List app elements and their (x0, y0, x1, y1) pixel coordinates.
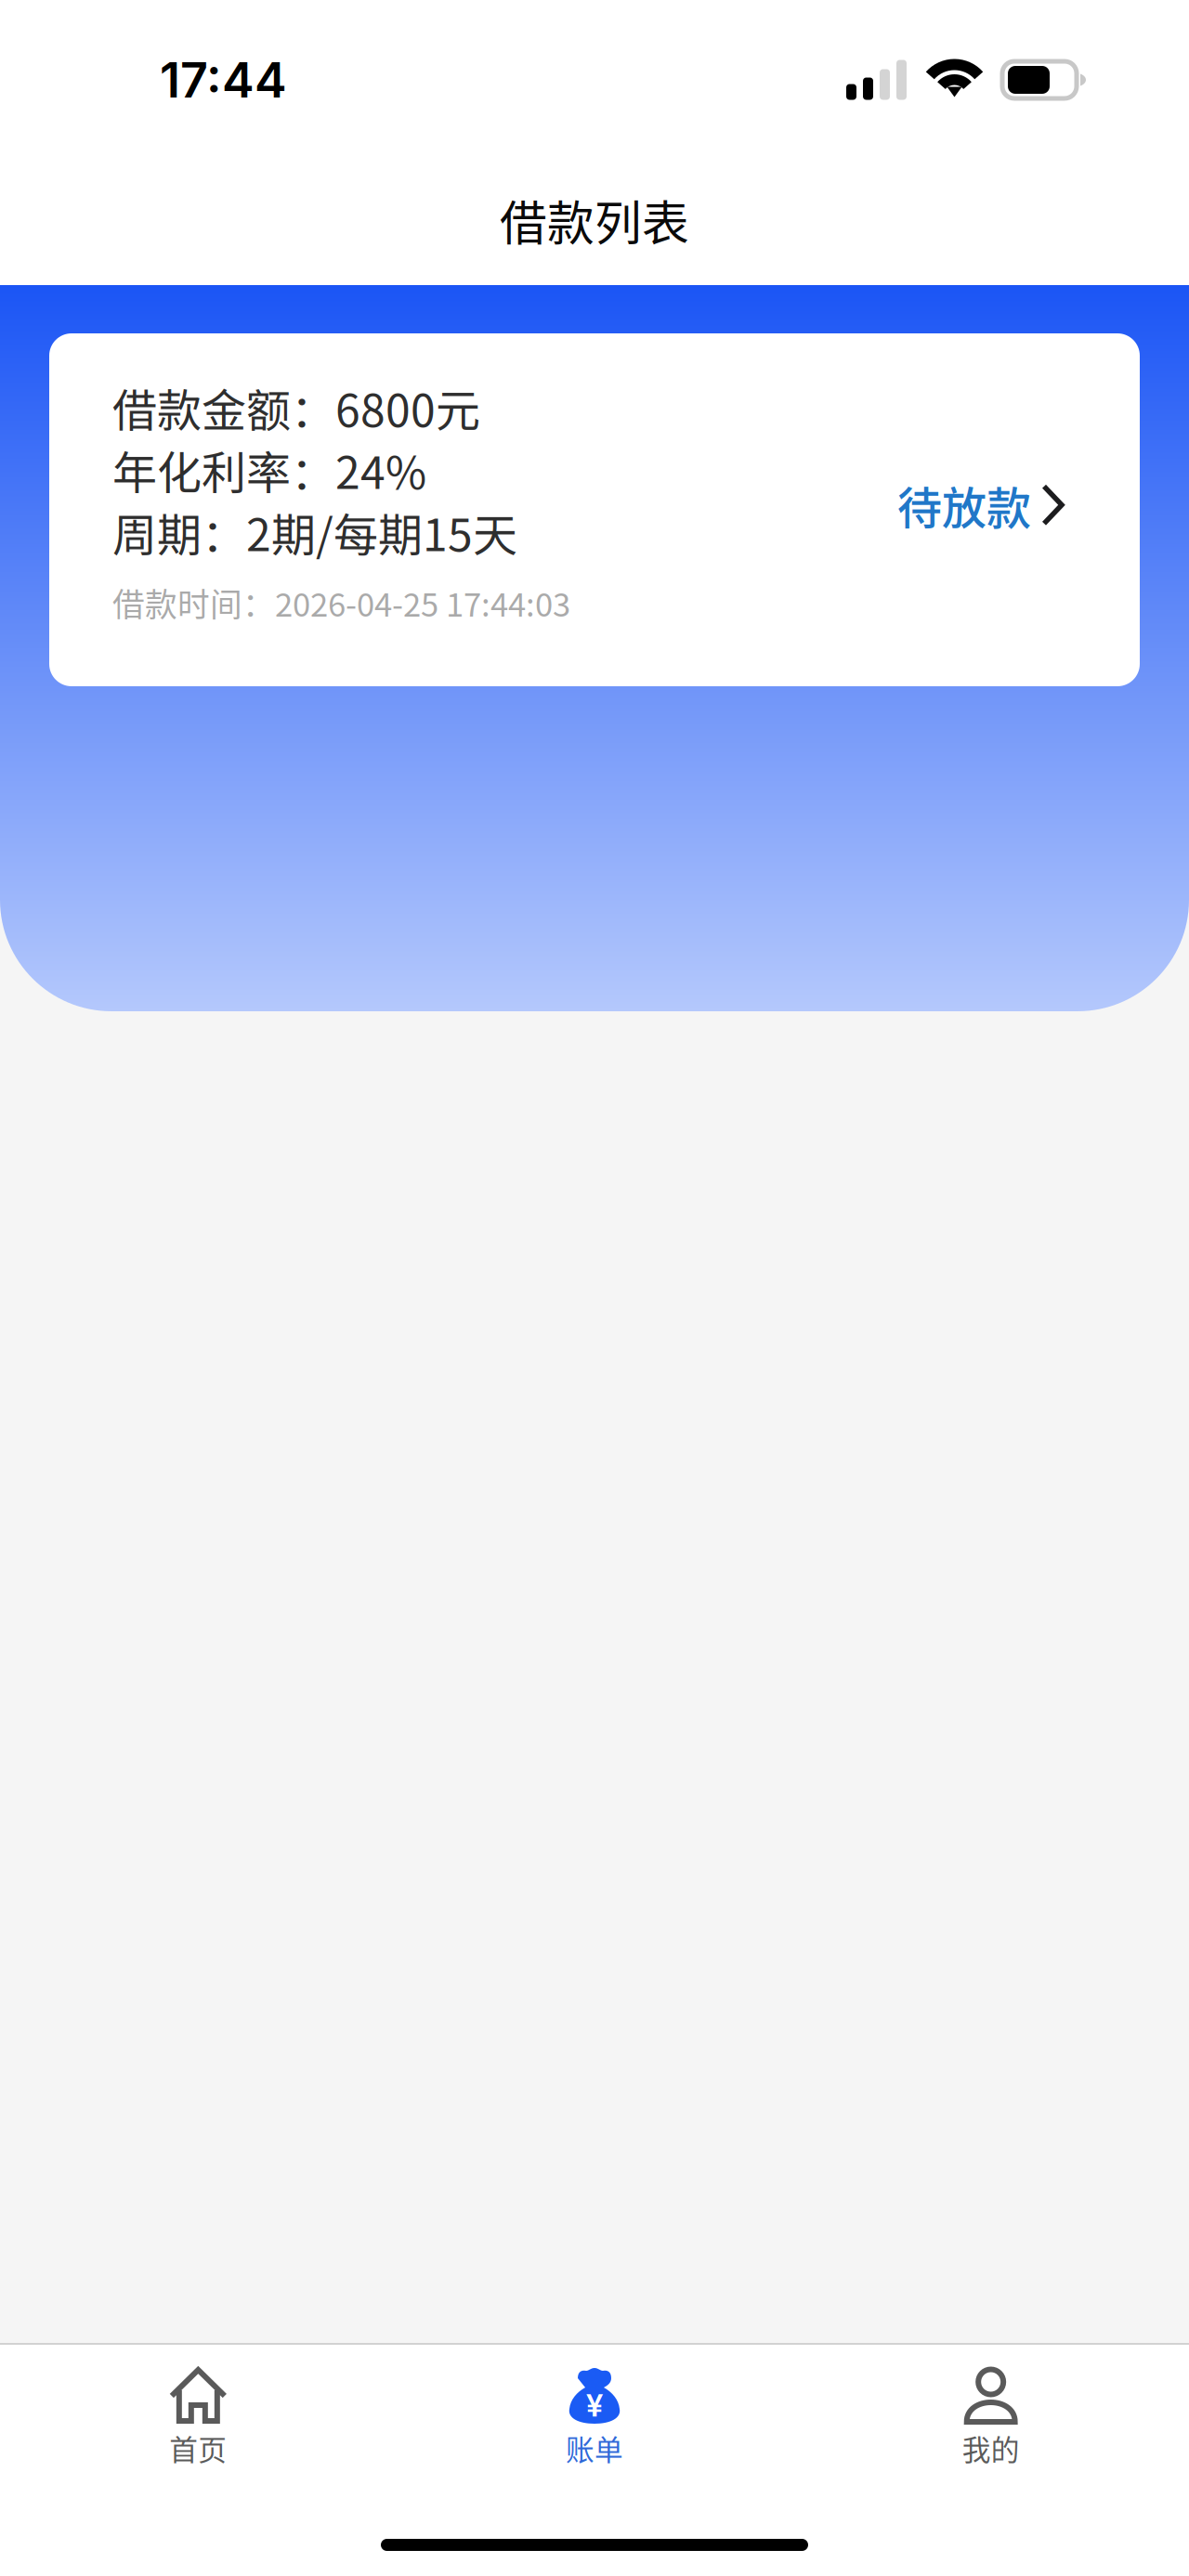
staticText: 借款时间：2026-04-25 17:44:03 (112, 579, 570, 626)
staticText: ¥ (586, 2386, 603, 2424)
button[interactable]: 首页 (0, 2358, 396, 2476)
staticText: 账单 (566, 2427, 623, 2469)
staticText: 17:44 (160, 51, 287, 109)
staticText: 待放款 (897, 473, 1031, 537)
button[interactable]: 借款金额：6800元 (49, 333, 1140, 686)
staticText: 我的 (962, 2427, 1020, 2469)
staticText: 借款金额：6800元 (112, 375, 480, 439)
staticText: 年化利率：24% (112, 437, 426, 502)
staticText: 借款列表 (500, 186, 689, 254)
button[interactable]: ¥ (396, 2358, 793, 2476)
button[interactable]: 我的 (793, 2358, 1189, 2476)
staticText: 周期：2期/每期15天 (112, 499, 517, 564)
staticText: 首页 (169, 2427, 227, 2469)
